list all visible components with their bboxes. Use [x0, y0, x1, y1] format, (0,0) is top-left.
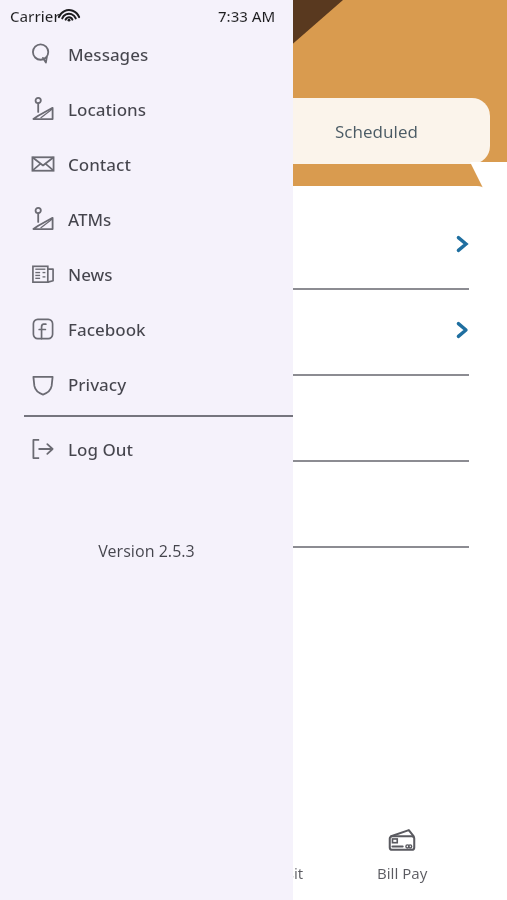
- button[interactable]: Privacy: [0, 363, 293, 405]
- other: Open details: [452, 320, 472, 340]
- button[interactable]: News: [0, 253, 293, 295]
- staticText: 7:33 AM: [218, 6, 276, 26]
- button[interactable]: Open details: [12, 204, 491, 290]
- button[interactable]: Locations: [0, 88, 293, 130]
- staticText: Messages: [68, 43, 149, 66]
- button[interactable]: Deposit: [150, 820, 403, 887]
- staticText: News: [68, 263, 113, 286]
- button[interactable]: ATMs: [0, 198, 293, 240]
- staticText: Scheduled: [335, 120, 418, 143]
- staticText: ATMs: [68, 208, 112, 231]
- staticText: Bill Pay: [377, 863, 428, 883]
- staticText: Locations: [68, 98, 146, 121]
- button[interactable]: Scheduled: [236, 98, 490, 164]
- button[interactable]: Facebook: [0, 308, 293, 350]
- button[interactable]: Log Out: [0, 428, 293, 470]
- button[interactable]: Bill Pay: [275, 820, 507, 887]
- staticText: Privacy: [68, 373, 127, 396]
- other: Open details: [452, 234, 472, 254]
- button[interactable]: [12, 462, 491, 548]
- button[interactable]: [12, 376, 491, 462]
- staticText: Deposit: [249, 863, 304, 883]
- staticText: Facebook: [68, 318, 146, 341]
- button[interactable]: Contact: [0, 143, 293, 185]
- button[interactable]: Messages: [0, 33, 293, 75]
- staticText: Carrier: [10, 6, 60, 26]
- button[interactable]: Open details: [12, 290, 491, 376]
- staticText: Version 2.5.3: [0, 540, 293, 562]
- staticText: Log Out: [68, 438, 133, 461]
- staticText: Contact: [68, 153, 131, 176]
